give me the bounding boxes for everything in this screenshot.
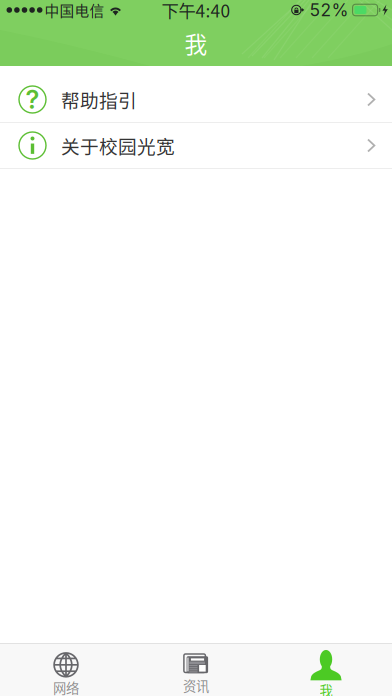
button[interactable]: 网络 bbox=[1, 644, 131, 696]
staticText: 我 bbox=[184, 27, 207, 59]
staticText: 我 bbox=[319, 680, 332, 696]
staticText: 关于校园光宽 bbox=[61, 132, 175, 159]
button[interactable]: ? bbox=[0, 77, 392, 123]
staticText: ? bbox=[25, 84, 39, 115]
staticText: 资讯 bbox=[183, 676, 209, 695]
staticText: 52% bbox=[309, 0, 348, 20]
staticText: 帮助指引 bbox=[61, 86, 137, 113]
staticText: 下午4:40 bbox=[161, 0, 230, 23]
button[interactable]: 关于校园光宽 bbox=[0, 123, 392, 169]
button[interactable]: 资讯 bbox=[131, 644, 261, 696]
button[interactable]: 我 bbox=[261, 644, 391, 696]
staticText: 中国电信 bbox=[44, 0, 104, 21]
staticText: 网络 bbox=[53, 678, 79, 696]
